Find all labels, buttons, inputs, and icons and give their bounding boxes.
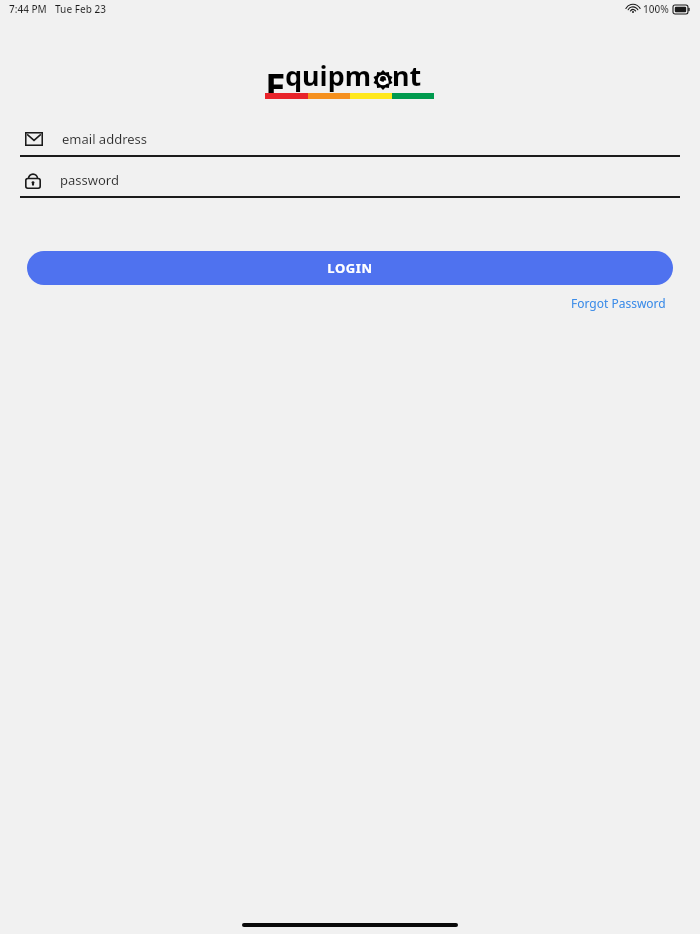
staticText: password — [60, 171, 119, 189]
staticText: E — [265, 61, 286, 97]
button[interactable]: LOGIN — [27, 251, 673, 285]
button[interactable]: Email — [0, 122, 700, 155]
button[interactable]: Forgot Password — [571, 293, 700, 313]
staticText: nt — [392, 57, 422, 93]
staticText: 7:44 PM — [9, 2, 47, 16]
staticText: 100% — [643, 2, 669, 16]
staticText: quipm — [285, 57, 372, 93]
staticText: email address — [62, 130, 148, 148]
staticText: Forgot Password — [571, 295, 666, 311]
other: Email — [25, 132, 43, 146]
other: Password — [25, 171, 41, 189]
staticText: Tue Feb 23 — [55, 2, 106, 16]
button[interactable]: Password — [0, 163, 700, 196]
staticText: LOGIN — [327, 259, 373, 277]
